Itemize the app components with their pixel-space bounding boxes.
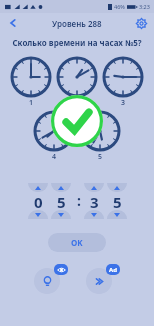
button[interactable]: Skip (86, 268, 112, 294)
staticText: Уровень 288 (52, 18, 102, 29)
staticText: 3:23 (139, 3, 150, 10)
button[interactable]: Decrease (51, 210, 71, 219)
staticText: 46% (114, 3, 125, 10)
staticText: 3 (90, 192, 99, 210)
button[interactable]: Back (4, 14, 22, 32)
staticText: 3 (121, 98, 126, 108)
staticText: 0 (34, 192, 43, 210)
staticText: 2 (75, 98, 80, 108)
staticText: : (77, 191, 81, 210)
staticText: 5 (113, 192, 122, 210)
staticText: 5 (57, 192, 66, 210)
staticText: Ad (109, 266, 117, 274)
button[interactable]: Increase (84, 183, 104, 192)
button[interactable]: Decrease (84, 210, 104, 219)
staticText: OK (71, 237, 83, 248)
button[interactable]: Increase (107, 183, 127, 192)
button[interactable]: OK (48, 233, 106, 252)
button[interactable]: Increase (28, 183, 48, 192)
button[interactable]: Increase (51, 183, 71, 192)
staticText: 4 (52, 152, 57, 162)
button[interactable]: Decrease (107, 210, 127, 219)
staticText: Сколько времени на часах №5? (12, 37, 142, 48)
button[interactable]: Settings (132, 14, 150, 32)
button[interactable]: Decrease (28, 210, 48, 219)
staticText: 5 (98, 152, 103, 162)
staticText: 1 (29, 98, 34, 108)
button[interactable]: Hint (34, 268, 60, 294)
